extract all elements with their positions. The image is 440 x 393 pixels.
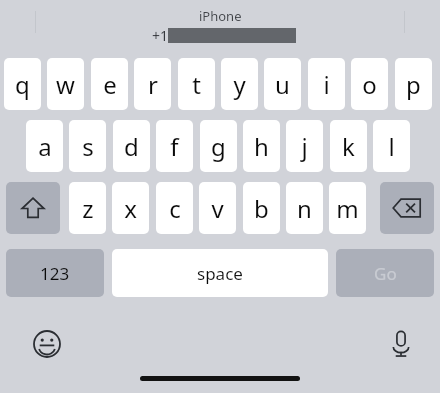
staticText: n [297, 192, 312, 225]
button[interactable]: l [373, 120, 410, 172]
staticText: k [342, 130, 355, 163]
staticText: e [103, 68, 117, 101]
button[interactable]: f [156, 120, 193, 172]
staticText: w [56, 68, 75, 101]
button[interactable]: p [395, 58, 432, 110]
staticText: d [124, 130, 139, 163]
staticText: space [197, 262, 243, 285]
staticText: x [124, 192, 137, 225]
staticText: y [233, 68, 246, 101]
button[interactable]: 123 [6, 249, 104, 297]
button[interactable]: w [47, 58, 84, 110]
button[interactable]: y [221, 58, 258, 110]
staticText: Go [374, 262, 397, 285]
button[interactable]: t [178, 58, 215, 110]
button[interactable]: r [134, 58, 171, 110]
staticText: 123 [40, 262, 70, 285]
staticText: +1 [152, 26, 169, 44]
button[interactable]: u [264, 58, 301, 110]
staticText: v [211, 192, 224, 225]
staticText: l [388, 130, 395, 163]
button[interactable]: o [351, 58, 388, 110]
staticText: s [82, 130, 94, 163]
button[interactable]: k [330, 120, 367, 172]
button[interactable]: v [199, 182, 236, 234]
button[interactable]: g [200, 120, 237, 172]
staticText: j [301, 130, 308, 163]
staticText: o [362, 68, 377, 101]
staticText: c [169, 192, 181, 225]
button[interactable]: i [308, 58, 345, 110]
button[interactable]: j [286, 120, 323, 172]
staticText: i [323, 68, 330, 101]
staticText: g [211, 130, 226, 163]
button[interactable]: Dictation [382, 325, 420, 363]
button[interactable]: d [113, 120, 150, 172]
staticText: m [336, 192, 359, 225]
button[interactable]: e [91, 58, 128, 110]
button[interactable]: Emoji [28, 325, 66, 363]
staticText: r [148, 68, 158, 101]
staticText: z [82, 192, 94, 225]
staticText: q [15, 68, 30, 101]
button[interactable]: n [286, 182, 323, 234]
staticText: p [406, 68, 421, 101]
button[interactable]: a [26, 120, 63, 172]
staticText: h [254, 130, 269, 163]
button[interactable]: Shift [6, 182, 60, 234]
staticText: u [275, 68, 290, 101]
button[interactable]: h [243, 120, 280, 172]
staticText: t [192, 68, 201, 101]
staticText: b [254, 192, 269, 225]
button[interactable]: x [112, 182, 149, 234]
button[interactable]: b [243, 182, 280, 234]
button[interactable]: Go [336, 249, 434, 297]
button[interactable]: m [329, 182, 366, 234]
button[interactable]: z [69, 182, 106, 234]
button[interactable]: c [156, 182, 193, 234]
staticText: f [170, 130, 179, 163]
button[interactable]: s [69, 120, 106, 172]
button[interactable]: space [112, 249, 328, 297]
button[interactable]: q [4, 58, 41, 110]
staticText: iPhone [199, 7, 242, 25]
staticText: a [38, 130, 52, 163]
button[interactable]: Backspace [380, 182, 434, 234]
